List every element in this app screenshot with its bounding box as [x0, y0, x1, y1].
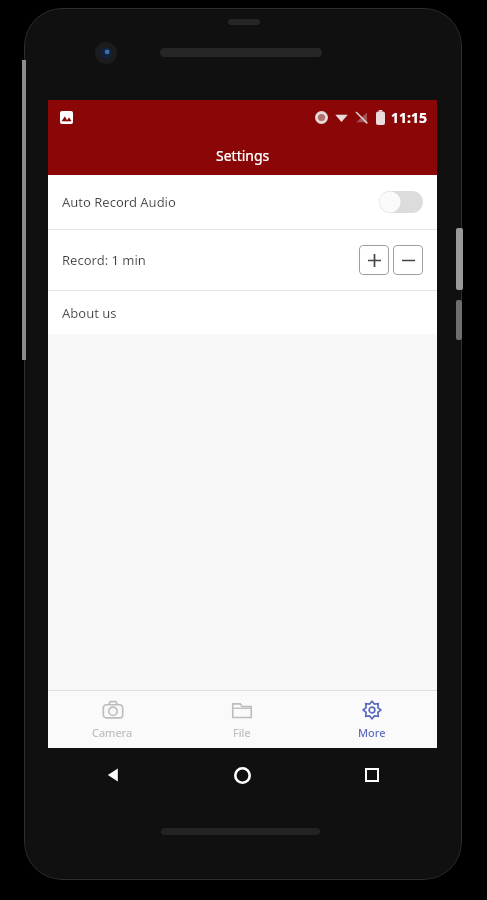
- button[interactable]: Decrease: [393, 245, 423, 275]
- button[interactable]: Auto Record Audio: [48, 175, 437, 229]
- button[interactable]: File: [177, 691, 307, 748]
- button[interactable]: Increase: [359, 245, 389, 275]
- staticText: Settings: [216, 146, 270, 165]
- button[interactable]: Auto Record Audio toggle: [379, 191, 423, 213]
- staticText: File: [233, 725, 251, 740]
- button[interactable]: More: [307, 691, 437, 748]
- staticText: Record: 1 min: [62, 251, 146, 269]
- button[interactable]: Record: 1 min: [48, 230, 437, 290]
- staticText: Auto Record Audio: [62, 193, 176, 211]
- button[interactable]: Back: [48, 748, 177, 802]
- staticText: 11:15: [391, 108, 427, 127]
- button[interactable]: About us: [48, 291, 437, 334]
- button[interactable]: Camera: [48, 691, 177, 748]
- button[interactable]: Recent apps: [307, 748, 437, 802]
- staticText: Camera: [92, 725, 133, 740]
- staticText: More: [358, 725, 386, 740]
- staticText: About us: [62, 304, 117, 322]
- button[interactable]: Home: [177, 748, 307, 802]
